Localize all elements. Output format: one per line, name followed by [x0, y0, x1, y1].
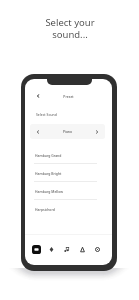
- staticText: Harpsichord: [35, 207, 55, 212]
- button[interactable]: Sounds: [29, 242, 43, 256]
- button[interactable]: Back: [33, 91, 43, 101]
- staticText: Select your sound...: [45, 16, 95, 41]
- staticText: Hamburg Grand: [35, 153, 62, 158]
- button[interactable]: Hamburg Bright: [30, 164, 105, 182]
- button[interactable]: Hamburg Mellow: [30, 182, 105, 200]
- button[interactable]: Previous preset: [30, 124, 46, 139]
- button[interactable]: Harpsichord: [30, 200, 105, 218]
- staticText: Piano: [46, 129, 89, 134]
- button[interactable]: Tuning: [44, 242, 58, 256]
- button[interactable]: Songs: [59, 242, 73, 256]
- staticText: Select Sound: [36, 112, 57, 117]
- button[interactable]: Metronome: [75, 242, 89, 256]
- button[interactable]: Hamburg Grand: [30, 146, 105, 164]
- button[interactable]: Next preset: [89, 124, 105, 139]
- button[interactable]: Settings: [90, 242, 104, 256]
- staticText: Preset: [25, 94, 112, 99]
- staticText: Hamburg Mellow: [35, 189, 63, 194]
- staticText: Hamburg Bright: [35, 171, 62, 176]
